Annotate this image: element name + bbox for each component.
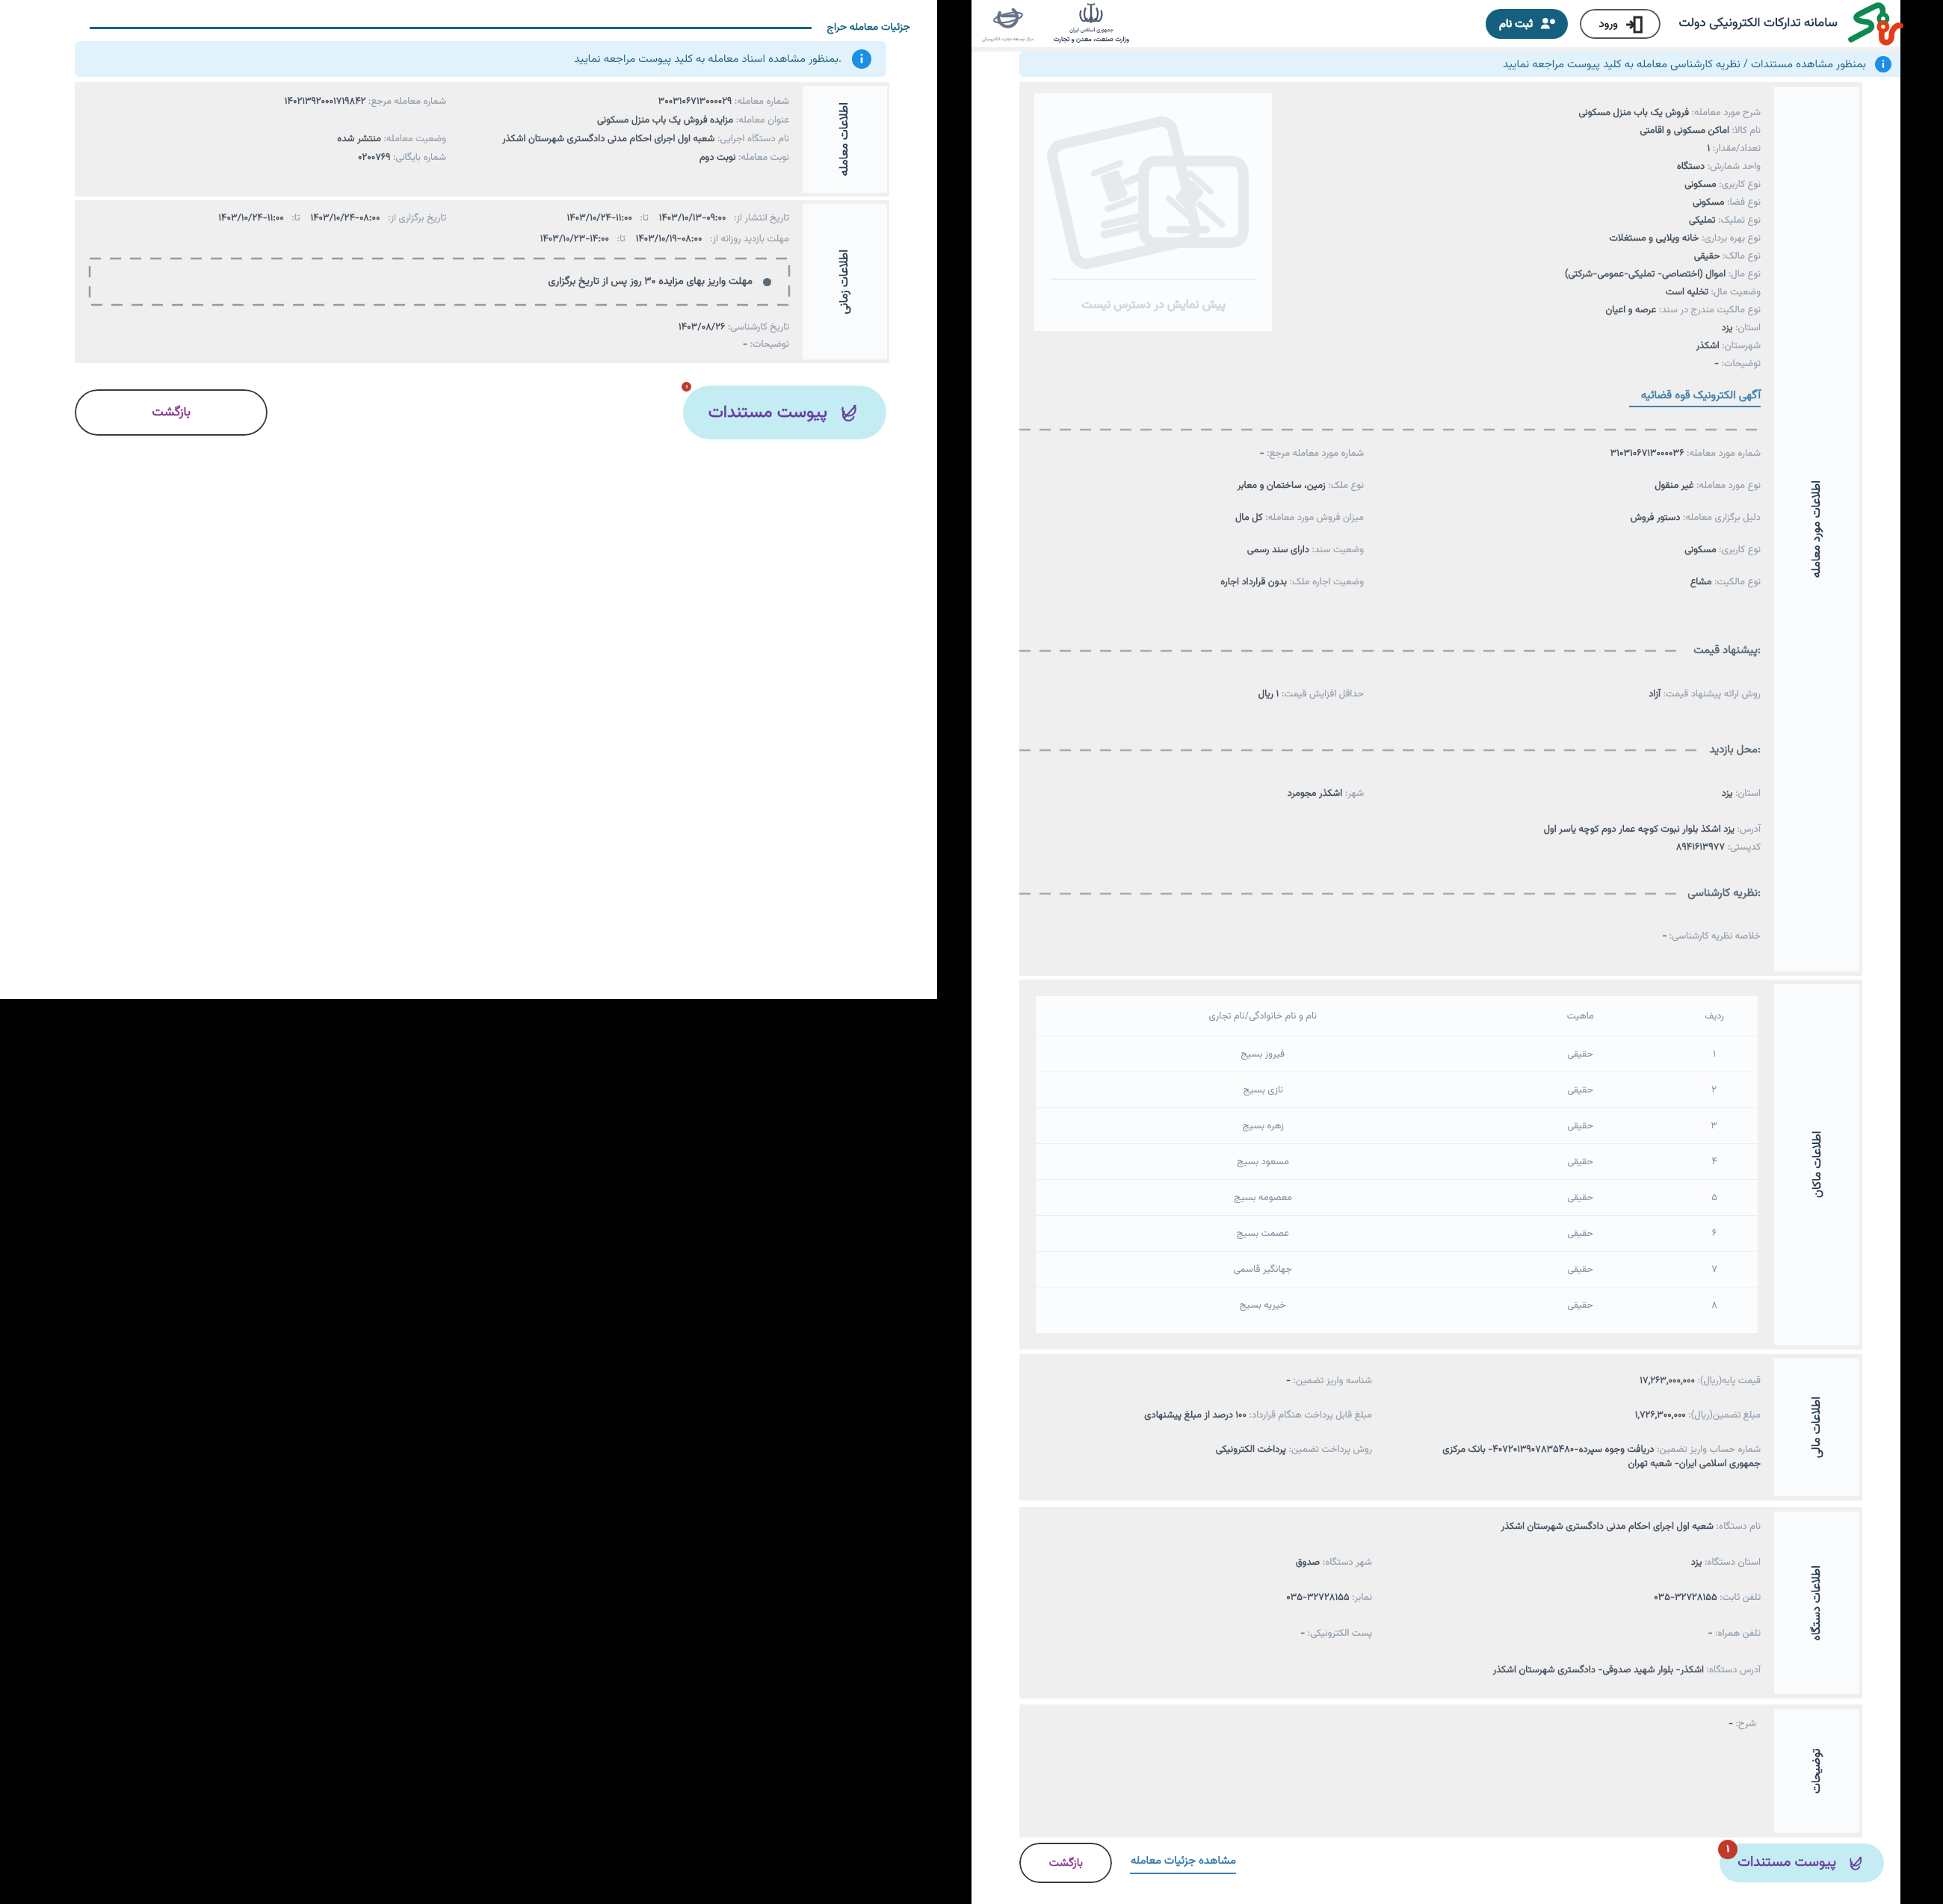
staticText: نوع مورد معامله: غیر منقول [1364,478,1761,493]
staticText: تاریخ انتشار از: ۰۹:۰۰-۱۴۰۳/۱۰/۱۳ تا: ۱۱… [401,211,789,226]
staticText: اطلاعات دستگاه [1808,1565,1826,1641]
button[interactable]: ثبت نام [1486,9,1568,39]
staticText: خیریه بسیج [1239,1298,1286,1313]
staticText: نام دستگاه اجرایی: شعبه اول اجرای احکام … [423,132,789,146]
staticText: شهرستان: اشکذر [1019,339,1761,353]
staticText: پیشنهاد قیمت: [1693,642,1761,659]
staticText: پست الکترونیکی: ‏-‏ [1034,1626,1372,1641]
staticText: تاریخ برگزاری از: ۰۸:۰۰-۱۴۰۳/۱۰/۲۴ تا: ۱… [90,211,446,226]
other: ستاد [1848,0,1897,47]
staticText: شرح: ‏-‏ [1019,1716,1756,1731]
other: پیوست مستندات [1847,1853,1866,1873]
other: ثبت نام [1539,16,1555,33]
staticText: حقیقی [1567,1226,1593,1241]
staticText: مهلت واریز بهای مزایده ۳۰ روز پس از تاری… [548,273,753,290]
staticText: شماره مورد معامله مرجع: ‏-‏ [1019,446,1364,461]
staticText: مبلغ تضمین(ریال): ۱,۷۲۶,۳۰۰,۰۰۰ [1376,1408,1761,1423]
staticText: توضیحات [1808,1749,1826,1794]
staticText: حداقل افزایش قیمت: ۱ ریال [1019,687,1364,702]
staticText: شناسه واریز تضمین: ‏-‏ [1034,1373,1372,1388]
staticText: ۸ [1711,1298,1717,1313]
staticText: قیمت پایه(ریال): ۱۷,۲۶۳,۰۰۰,۰۰۰ [1376,1373,1761,1388]
staticText: اطلاعات معامله [835,102,854,176]
staticText: شهر دستگاه: صدوق [1034,1555,1372,1570]
staticText: محل بازدید: [1709,741,1761,758]
staticText: ۵ [1711,1190,1717,1205]
staticText: ۳ [1711,1119,1717,1134]
staticText: اطلاعات مورد معامله [1808,480,1826,578]
button[interactable]: بازگشت [75,389,268,436]
staticText: واحد شمارش: دستگاه [1019,159,1761,174]
staticText: نوع مال: اموال (اختصاصی- تملیکی-عمومی-شر… [1019,267,1761,282]
staticText: روش پرداخت تضمین: پرداخت الکترونیکی [1034,1442,1372,1457]
staticText: وضعیت اجاره ملک: بدون قرارداد اجاره [1019,575,1364,590]
staticText: نوع کاربری: مسکونی [1019,177,1761,192]
staticText: شماره مورد معامله: ۳۱۰۳۱۰۶۷۱۳۰۰۰۰۳۶ [1364,446,1761,461]
staticText: نوع تملیک: تملیکی [1019,213,1761,228]
staticText: مبلغ قابل پرداخت هنگام قرارداد: ۱۰۰ درصد… [1034,1408,1372,1423]
staticText: تعداد/مقدار: ۱ [1019,141,1761,156]
staticText: پیش نمایش در دسترس نیست [1081,296,1226,315]
staticText: تاریخ کارشناسی: ۱۴۰۳/۰۸/۲۶ [90,320,789,335]
staticText: زهره بسیج [1242,1119,1284,1134]
staticText: تلفن ثابت: ۳۲۷۲۸۱۵۵-۰۳۵ [1376,1590,1761,1605]
staticText: آدرس: یزد اشکذ بلوار نبوت کوچه عمار دوم … [1019,822,1761,837]
staticText: میزان فروش مورد معامله: کل مال [1019,510,1364,525]
staticText: مهلت بازدید روزانه از: ۰۸:۰۰-۱۴۰۳/۱۰/۱۹ … [401,232,789,247]
staticText: ثبت نام [1499,16,1533,33]
staticText: استان: یزد [1364,786,1761,801]
staticText: نوع ملک: زمین، ساختمان و معابر [1019,478,1364,493]
staticText: اطلاعات زمانی [835,250,854,315]
staticText: اطلاعات ماکان [1808,1131,1827,1198]
staticText: بازگشت [152,403,191,423]
staticText: نمابر: ۳۲۷۲۸۱۵۵-۰۳۵ [1034,1590,1372,1605]
staticText: آگهی الکترونیک قوه قضائیه [1640,387,1761,404]
staticText: مرکز توسعه تجارت الکترونیکی [982,36,1034,43]
staticText: نوع مالک: حقیقی [1019,249,1761,264]
staticText: ۶ [1711,1226,1717,1241]
staticText: نوع مالکیت: مشاع [1364,575,1761,590]
staticText: حقیقی [1567,1083,1593,1098]
button[interactable]: بمنظور مشاهده اسناد معامله به کلید پیوست… [75,41,886,77]
staticText: نام و نام خانوادگی/نام تجاری [1208,1009,1317,1024]
staticText: بازگشت [1048,1855,1083,1872]
staticText: نام کالا: اماکن مسکونی و اقامتی [1019,123,1761,138]
button[interactable]: آگهی الکترونیک قوه قضائیه [1629,387,1761,407]
staticText: پیوست مستندات [708,399,827,426]
staticText: نوع فضا: مسکونی [1019,195,1761,210]
staticText: بمنظور مشاهده مستندات / نظریه کارشناسی م… [1502,56,1866,73]
staticText: معصومه بسیج [1234,1190,1292,1205]
staticText: جمهوری اسلامی ایران [1069,26,1113,34]
staticText: توضیحات: ‏-‏ [1019,356,1761,371]
staticText: نظریه کارشناسی: [1687,885,1761,902]
staticText: جهانگیر قاسمی [1233,1262,1292,1277]
staticText: عصمت بسیج [1236,1226,1289,1241]
staticText: نام دستگاه: شعبه اول اجرای احکام مدنی دا… [1034,1519,1761,1534]
button[interactable]: ورود [1580,9,1661,39]
staticText: توضیحات: ‏-‏ [90,337,789,352]
staticText: نازی بسیج [1243,1083,1283,1098]
staticText: استان دستگاه: یزد [1376,1555,1761,1570]
staticText: ۱ [1726,1842,1729,1857]
staticText: خلاصه نظریه کارشناسی: ‏-‏ [1019,929,1761,944]
staticText: وزارت صنعت، معدن و تجارت [1053,34,1129,45]
staticText: استان: یزد [1019,321,1761,336]
staticText: شماره حساب واریز تضمین: دریافت وجوه سپرد… [1427,1442,1761,1471]
staticText: نوع مالکیت مندرج در سند: عرصه و اعیان [1019,303,1761,318]
staticText: روش ارائه پیشنهاد قیمت: آزاد [1364,687,1761,702]
staticText: وضعیت معامله: منتشر شده [90,132,446,146]
staticText: نوبت معامله: نوبت دوم [423,150,789,165]
staticText: آدرس دستگاه: اشکذر- بلوار شهید صدوقی- دا… [1034,1663,1761,1678]
button[interactable]: پیوست مستندات [683,386,886,439]
button[interactable]: پیوست مستندات [1720,1843,1884,1882]
staticText: مشاهده جزئیات معامله [1131,1852,1236,1870]
staticText: حقیقی [1567,1262,1593,1277]
staticText: ردیف [1705,1009,1724,1024]
button[interactable]: مشاهده جزئیات معامله [1130,1852,1236,1874]
button[interactable]: بازگشت [1019,1843,1112,1883]
button[interactable]: بمنظور مشاهده مستندات / نظریه کارشناسی م… [1019,52,1900,77]
staticText: تلفن همراه: ‏-‏ [1376,1626,1761,1641]
staticText: ۱ [1713,1047,1716,1062]
staticText: حقیقی [1567,1155,1593,1169]
staticText: بمنظور مشاهده اسناد معامله به کلید پیوست… [574,51,841,68]
